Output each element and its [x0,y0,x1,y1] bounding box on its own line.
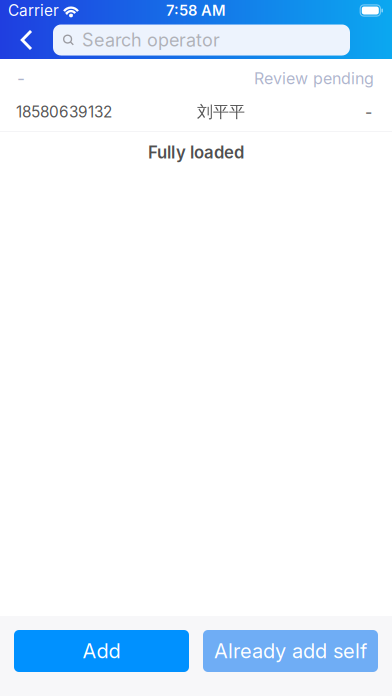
staticText: Add [82,639,120,663]
staticText: - [17,68,25,89]
button[interactable]: Search operator [53,24,350,55]
staticText: 7:58 AM [166,2,226,19]
staticText: 刘平平 [197,102,245,122]
staticText: Fully loaded [148,142,244,163]
staticText: Review pending [254,69,374,88]
button[interactable]: - [0,59,392,98]
button[interactable]: 18580639132 [0,98,392,126]
button[interactable]: Back [6,23,53,57]
button[interactable]: Already add self [203,630,378,672]
staticText: Carrier [8,1,59,20]
staticText: Already add self [214,639,367,663]
staticText: 18580639132 [16,103,112,121]
staticText: - [365,102,372,122]
staticText: Search operator [82,29,220,51]
button[interactable]: Add [14,630,189,672]
